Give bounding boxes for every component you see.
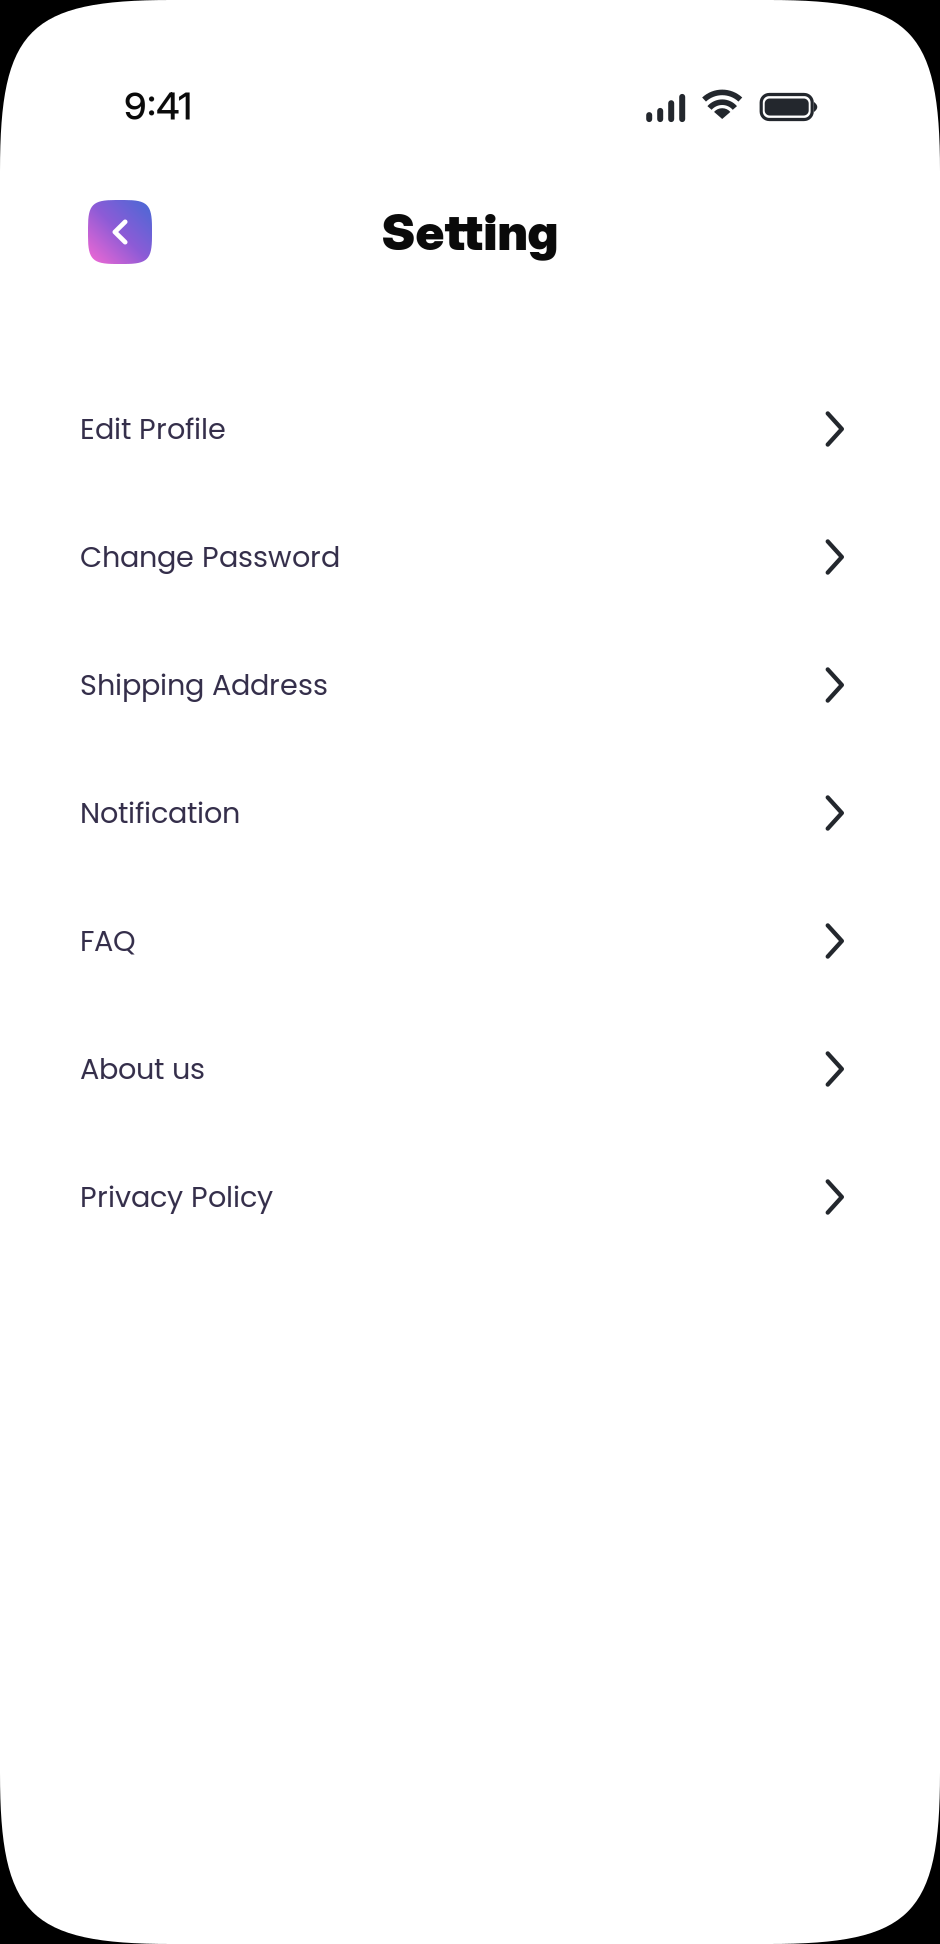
staticText: Shipping Address: [80, 665, 328, 705]
staticText: About us: [80, 1049, 205, 1089]
button[interactable]: Privacy Policy: [0, 1133, 940, 1261]
button[interactable]: FAQ: [0, 877, 940, 1005]
staticText: Privacy Policy: [80, 1177, 273, 1217]
staticText: Edit Profile: [80, 409, 226, 449]
button[interactable]: Notification: [0, 749, 940, 877]
button[interactable]: Change Password: [0, 493, 940, 621]
button[interactable]: Edit Profile: [0, 365, 940, 493]
button[interactable]: Back: [88, 200, 152, 264]
staticText: 9:41: [124, 83, 192, 129]
staticText: Change Password: [80, 537, 340, 577]
staticText: Notification: [80, 793, 240, 833]
staticText: FAQ: [80, 921, 136, 961]
button[interactable]: About us: [0, 1005, 940, 1133]
button[interactable]: Shipping Address: [0, 621, 940, 749]
staticText: Setting: [381, 202, 558, 262]
